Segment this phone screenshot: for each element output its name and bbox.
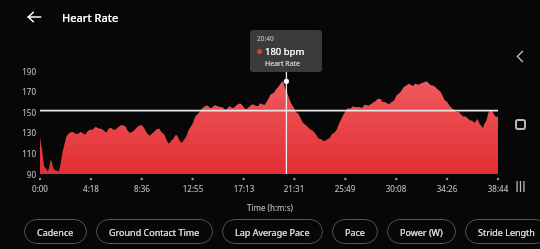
staticText: Cadence <box>37 226 74 238</box>
staticText: 17:13 <box>226 183 262 194</box>
button[interactable]: Home <box>508 112 532 136</box>
staticText: 130 <box>14 127 36 138</box>
staticText: Lap Average Pace <box>235 226 310 238</box>
staticText: 8:36 <box>124 183 160 194</box>
staticText: 20:40 <box>257 34 274 43</box>
staticText: 38:44 <box>480 183 516 194</box>
button[interactable]: Stride Length <box>465 219 540 244</box>
staticText: 150 <box>14 107 36 118</box>
staticText: Pace <box>345 226 365 238</box>
staticText: 30:08 <box>378 183 414 194</box>
staticText: Heart Rate <box>265 59 301 69</box>
staticText: Ground Contact Time <box>109 226 200 238</box>
staticText: 25:49 <box>327 183 363 194</box>
staticText: Time (h:m:s) <box>234 202 306 213</box>
button[interactable]: Cadence <box>24 219 87 244</box>
button[interactable]: Ground Contact Time <box>96 219 213 244</box>
button[interactable]: Power (W) <box>387 219 456 244</box>
staticText: 110 <box>14 148 36 159</box>
staticText: Heart Rate <box>62 10 119 25</box>
staticText: 21:31 <box>276 183 312 194</box>
button[interactable]: Pace <box>332 219 378 244</box>
staticText: 0:00 <box>22 183 58 194</box>
staticText: 4:18 <box>73 183 109 194</box>
staticText: 12:55 <box>175 183 211 194</box>
staticText: 170 <box>14 86 36 97</box>
staticText: 90 <box>14 169 36 180</box>
staticText: 180 bpm <box>265 45 305 58</box>
staticText: Stride Length <box>478 226 535 238</box>
staticText: 34:26 <box>429 183 465 194</box>
button[interactable]: Recents <box>508 174 532 198</box>
staticText: 190 <box>14 66 36 77</box>
button[interactable]: Lap Average Pace <box>222 219 323 244</box>
staticText: Power (W) <box>400 226 443 238</box>
button[interactable]: Back <box>508 44 532 68</box>
button[interactable]: Back <box>20 3 48 31</box>
